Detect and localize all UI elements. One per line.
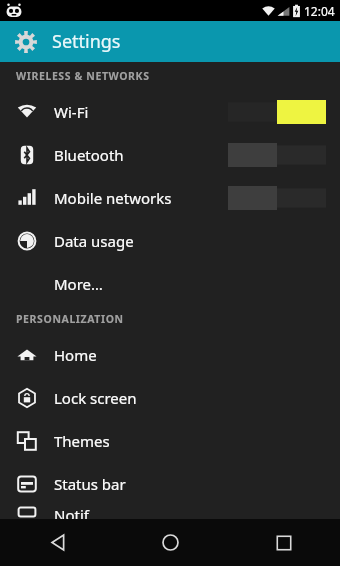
button[interactable]: More… [0,262,340,305]
button[interactable]: Toggle on [228,100,326,124]
button[interactable]: Back [0,519,114,566]
button[interactable]: Toggle off [228,186,326,210]
button[interactable]: Settings [0,21,340,62]
button[interactable]: Recent apps [227,519,340,566]
staticText: PERSONALIZATION [16,312,124,326]
staticText: Data usage [54,231,326,251]
button[interactable]: Notif [0,505,340,519]
staticText: Mobile networks [54,188,228,208]
staticText: WIRELESS & NETWORKS [16,69,150,83]
button[interactable]: Lock screen [0,376,340,419]
staticText: Lock screen [54,388,326,408]
staticText: Status bar [54,474,326,494]
button[interactable]: Mobile networks [0,176,340,219]
button[interactable]: Data usage [0,219,340,262]
button[interactable]: Bluetooth [0,133,340,176]
button[interactable]: Themes [0,419,340,462]
staticText: Wi-Fi [54,102,228,122]
button[interactable]: Toggle off [228,143,326,167]
button[interactable]: Home [0,333,340,376]
button[interactable]: Home [114,519,227,566]
button[interactable]: Status bar [0,462,340,505]
staticText: Settings [52,29,121,54]
staticText: 12:04 [304,3,335,19]
staticText: Home [54,345,326,365]
button[interactable]: Wi-Fi [0,90,340,133]
staticText: Themes [54,431,326,451]
staticText: Bluetooth [54,145,228,165]
staticText: Notif [54,505,326,519]
staticText: More… [54,274,326,294]
